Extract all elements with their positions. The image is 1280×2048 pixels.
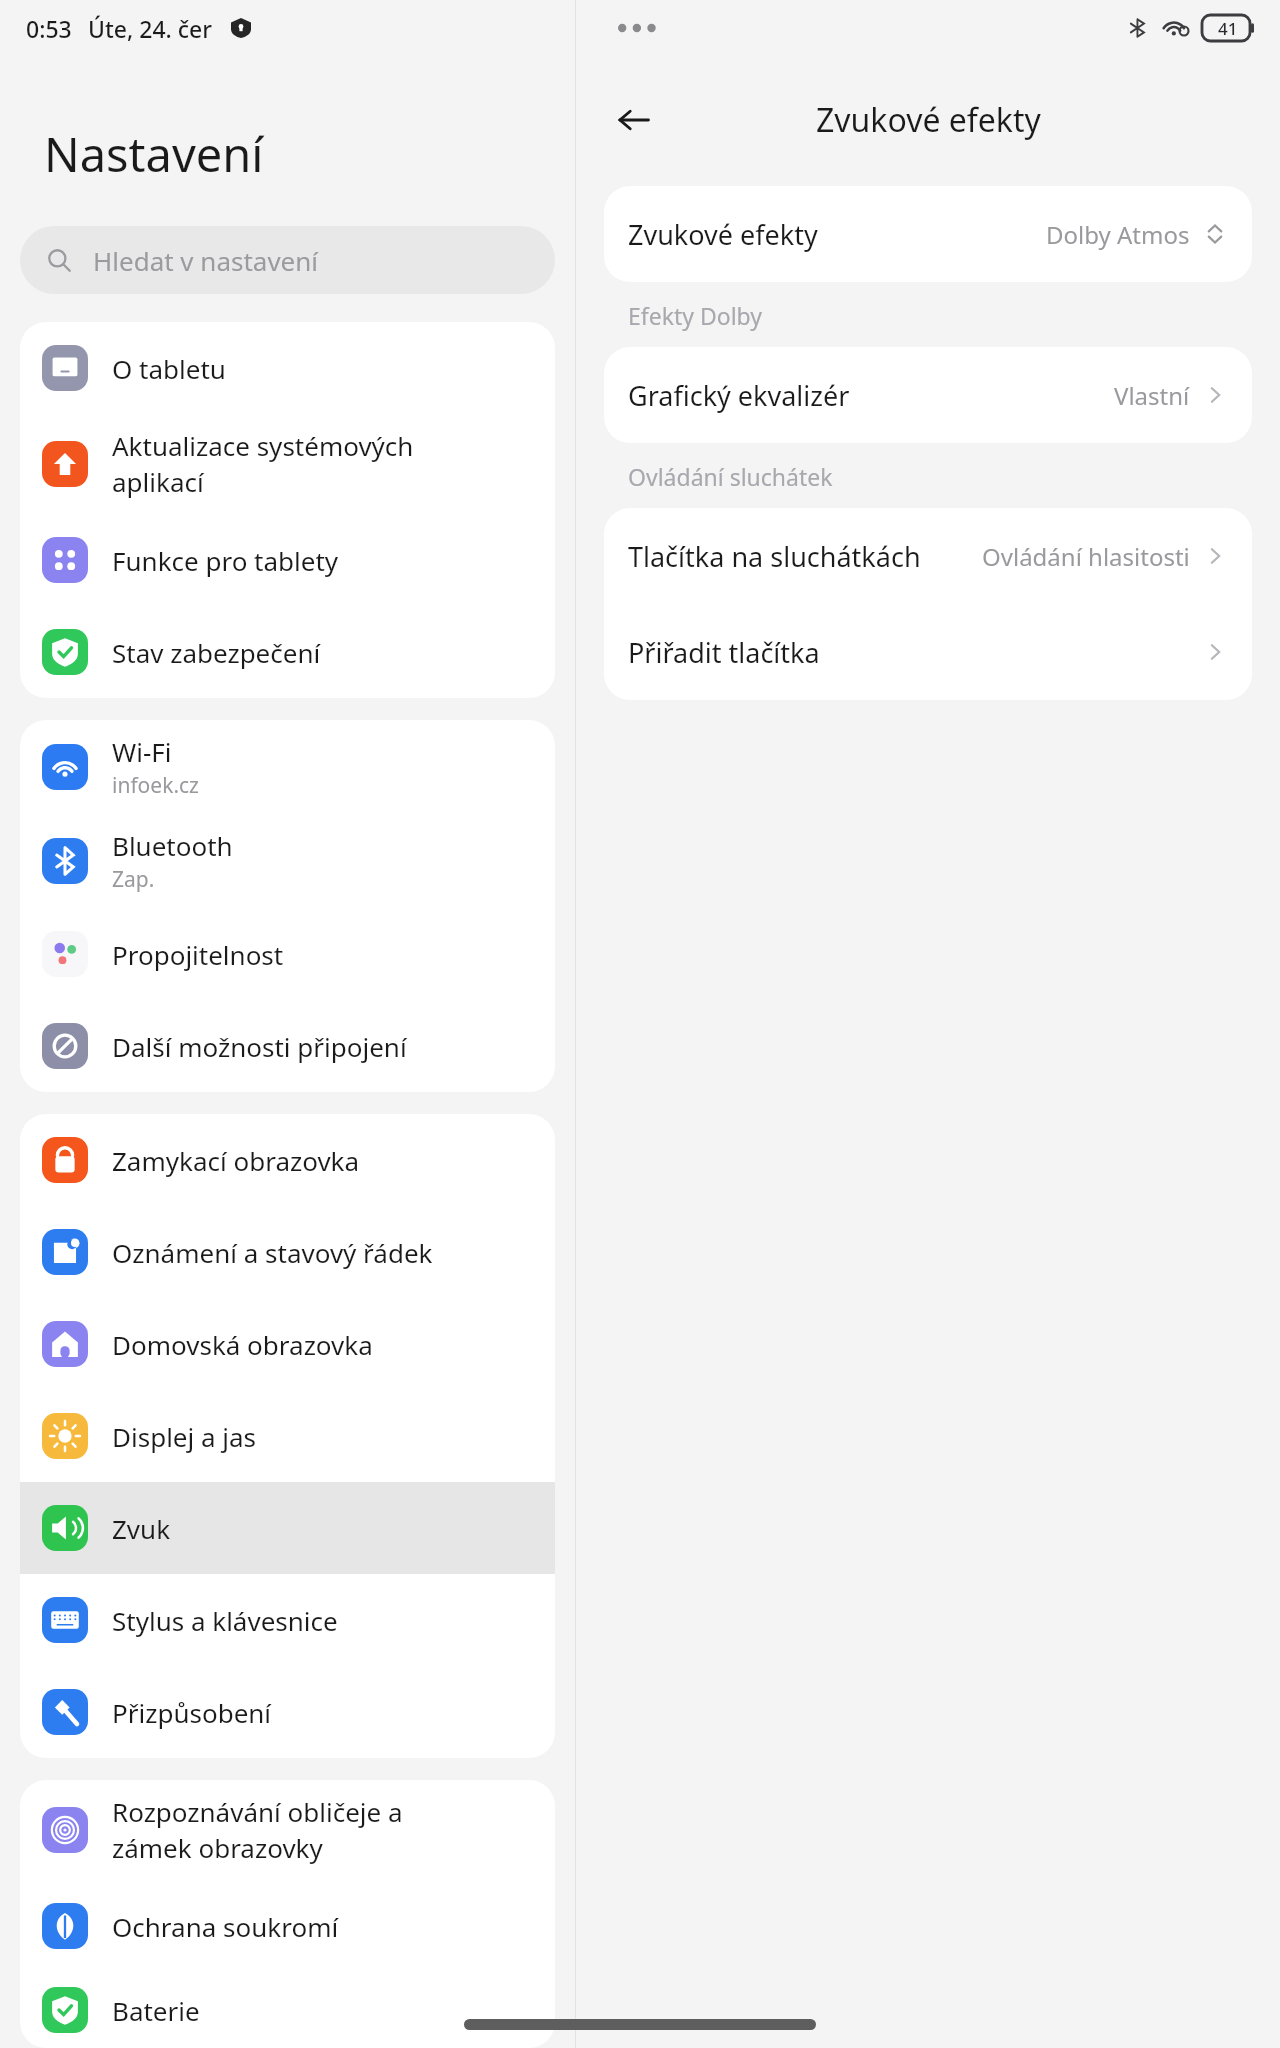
- staticText: infoek.cz: [112, 771, 199, 800]
- staticText: Aktualizace systémových aplikací: [112, 428, 414, 500]
- button[interactable]: Tlačítka na sluchátkách: [604, 508, 1252, 604]
- button[interactable]: Hledat v nastavení: [20, 226, 555, 294]
- button[interactable]: Bluetooth: [20, 814, 555, 908]
- button[interactable]: Rozpoznávání obličeje a zámek obrazovky: [20, 1780, 555, 1880]
- button[interactable]: Aktualizace systémových aplikací: [20, 414, 555, 514]
- staticText: Ovládání hlasitosti: [982, 540, 1190, 573]
- staticText: Ochrana soukromí: [112, 1909, 339, 1944]
- staticText: Stylus a klávesnice: [112, 1603, 338, 1638]
- button[interactable]: Back: [604, 90, 664, 150]
- button[interactable]: O tabletu: [20, 322, 555, 414]
- staticText: Přizpůsobení: [112, 1695, 272, 1730]
- staticText: Hledat v nastavení: [93, 243, 319, 278]
- staticText: Dolby Atmos: [1046, 218, 1190, 251]
- button[interactable]: Zvukové efekty: [604, 186, 1252, 282]
- button[interactable]: Wi-Fi: [20, 720, 555, 814]
- button[interactable]: Domovská obrazovka: [20, 1298, 555, 1390]
- button[interactable]: Zvuk: [20, 1482, 555, 1574]
- staticText: Oznámení a stavový řádek: [112, 1235, 433, 1270]
- staticText: 41: [1218, 17, 1238, 40]
- button[interactable]: Oznámení a stavový řádek: [20, 1206, 555, 1298]
- staticText: Zvukové efekty: [816, 98, 1041, 142]
- staticText: Zvuk: [112, 1511, 171, 1546]
- button[interactable]: Grafický ekvalizér: [604, 347, 1252, 443]
- staticText: Efekty Dolby: [628, 300, 763, 331]
- staticText: Tlačítka na sluchátkách: [628, 538, 982, 575]
- button[interactable]: Funkce pro tablety: [20, 514, 555, 606]
- staticText: Přiřadit tlačítka: [628, 634, 1202, 671]
- button[interactable]: Další možnosti připojení: [20, 1000, 555, 1092]
- staticText: Vlastní: [1114, 379, 1190, 412]
- button[interactable]: Ochrana soukromí: [20, 1880, 555, 1972]
- button[interactable]: Baterie: [20, 1972, 555, 2048]
- staticText: Stav zabezpečení: [112, 635, 321, 670]
- button[interactable]: Propojitelnost: [20, 908, 555, 1000]
- staticText: Zvukové efekty: [628, 216, 1046, 253]
- staticText: Bluetooth: [112, 828, 233, 863]
- staticText: Funkce pro tablety: [112, 543, 339, 578]
- staticText: Grafický ekvalizér: [628, 377, 1114, 414]
- staticText: Baterie: [112, 1993, 200, 2028]
- staticText: Zap.: [112, 865, 155, 894]
- button[interactable]: Přizpůsobení: [20, 1666, 555, 1758]
- staticText: Ovládání sluchátek: [628, 461, 833, 492]
- button[interactable]: Stav zabezpečení: [20, 606, 555, 698]
- staticText: Displej a jas: [112, 1419, 257, 1454]
- staticText: Wi-Fi: [112, 734, 172, 769]
- staticText: Nastavení: [44, 122, 264, 186]
- staticText: Propojitelnost: [112, 937, 284, 972]
- staticText: Domovská obrazovka: [112, 1327, 373, 1362]
- staticText: Úte, 24. čer: [88, 13, 213, 44]
- button[interactable]: Přiřadit tlačítka: [604, 604, 1252, 700]
- staticText: Zamykací obrazovka: [112, 1143, 360, 1178]
- button[interactable]: Zamykací obrazovka: [20, 1114, 555, 1206]
- staticText: Další možnosti připojení: [112, 1029, 407, 1064]
- button[interactable]: Displej a jas: [20, 1390, 555, 1482]
- staticText: Rozpoznávání obličeje a zámek obrazovky: [112, 1794, 403, 1866]
- staticText: O tabletu: [112, 351, 226, 386]
- button[interactable]: Stylus a klávesnice: [20, 1574, 555, 1666]
- staticText: 0:53: [26, 13, 72, 44]
